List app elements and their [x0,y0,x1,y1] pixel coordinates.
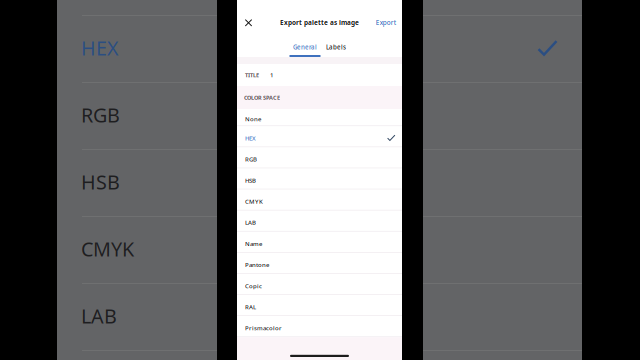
staticText: HEX [81,34,119,61]
button[interactable]: Export [367,8,402,37]
staticText: CMYK [81,235,134,262]
button[interactable]: None [237,109,402,125]
staticText: LAB [245,218,256,227]
staticText: Copic [245,282,262,290]
button[interactable]: Prismacolor [237,316,402,336]
button[interactable]: Copic [237,274,402,294]
staticText: Pantone [245,261,269,269]
button[interactable]: Pantone [237,253,402,273]
staticText: LAB [81,302,117,329]
staticText: Name [245,239,262,248]
staticText: HEX [245,134,256,142]
staticText: 1 [270,71,273,79]
button[interactable]: RAL [237,295,402,315]
button[interactable]: LAB [237,210,402,231]
button[interactable]: Close [237,9,261,36]
button[interactable]: RGB [237,147,402,168]
staticText: HSB [245,176,256,184]
staticText: General [293,43,317,51]
staticText: Export [376,18,396,27]
button[interactable]: HSB [237,168,402,189]
button[interactable]: CMYK [237,189,402,210]
staticText: None [245,115,261,123]
button[interactable]: Name [237,232,402,252]
staticText: RAL [245,303,256,311]
button[interactable]: Labels [323,41,349,53]
button[interactable]: HEX [237,126,402,146]
staticText: RGB [81,101,120,128]
staticText: Labels [326,43,346,51]
staticText: TITLE [245,71,259,79]
staticText: Export palette as image [280,18,359,27]
staticText: Prismacolor [245,324,282,332]
staticText: CMYK [245,197,263,205]
staticText: HSB [81,168,120,195]
staticText: RGB [245,155,257,163]
staticText: COLOR SPACE [244,94,280,101]
button[interactable]: General [290,41,320,53]
